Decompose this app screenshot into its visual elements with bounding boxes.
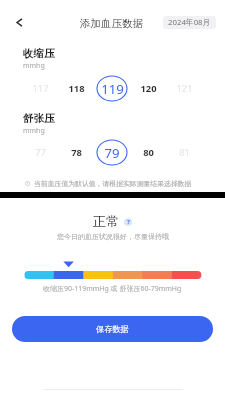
staticText: 78 — [71, 146, 82, 159]
staticText: 2024年08月 — [168, 17, 211, 28]
staticText: 您今日的血压状况很好，尽量保持哦 — [57, 232, 169, 241]
staticText: 121 — [176, 82, 193, 95]
button[interactable]: 77 — [22, 140, 58, 165]
staticText: 77 — [35, 146, 46, 159]
button[interactable]: 81 — [166, 140, 202, 165]
button[interactable]: 119 — [94, 76, 130, 101]
button[interactable]: Help — [124, 218, 132, 226]
button[interactable]: 117 — [22, 76, 58, 101]
button[interactable]: 添加血压数据 — [80, 17, 143, 30]
button[interactable]: 121 — [166, 76, 202, 101]
staticText: 收缩压 — [23, 47, 55, 60]
staticText: 119 — [101, 80, 124, 98]
staticText: 保存数据 — [96, 324, 129, 334]
staticText: 81 — [179, 146, 190, 159]
button[interactable]: 79 — [94, 140, 130, 165]
staticText: 117 — [32, 82, 49, 95]
staticText: 舒张压 — [23, 112, 55, 125]
staticText: mmhg — [23, 126, 45, 136]
staticText: ? — [127, 218, 130, 226]
button[interactable]: 78 — [58, 140, 94, 165]
staticText: 当前血压值为默认值，请根据实际测量结果选择数据 — [34, 179, 192, 188]
button[interactable]: 保存数据 — [12, 316, 213, 342]
button[interactable]: Back — [4, 7, 34, 37]
staticText: 收缩压90-119mmHg 或 舒张压60-79mmHg — [43, 284, 182, 294]
staticText: 118 — [68, 82, 85, 95]
staticText: 正常 — [93, 213, 120, 230]
button[interactable]: 80 — [130, 140, 166, 165]
staticText: 79 — [104, 144, 120, 162]
button[interactable]: 118 — [58, 76, 94, 101]
staticText: 80 — [143, 146, 154, 159]
button[interactable]: 2024年08月 — [163, 16, 216, 29]
staticText: 添加血压数据 — [80, 17, 143, 30]
staticText: 120 — [140, 82, 157, 95]
button[interactable]: 120 — [130, 76, 166, 101]
button[interactable]: 当前血压值为默认值，请根据实际测量结果选择数据 — [25, 179, 192, 188]
staticText: mmhg — [23, 61, 45, 71]
